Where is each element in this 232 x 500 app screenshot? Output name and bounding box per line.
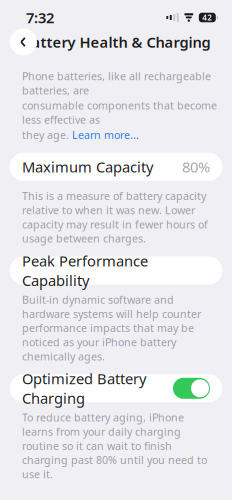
staticText: Phone batteries, like all rechargeable b… bbox=[22, 69, 211, 97]
button[interactable]: Optimized Battery Charging bbox=[10, 374, 222, 402]
staticText: This is a measure of battery capacity re… bbox=[22, 189, 208, 245]
staticText: 7:32 bbox=[26, 8, 54, 27]
staticText: Optimized Battery Charging bbox=[22, 369, 146, 408]
button[interactable]: Back bbox=[10, 28, 37, 55]
button[interactable]: Learn more... bbox=[72, 128, 139, 142]
button[interactable]: Maximum Capacity bbox=[10, 153, 222, 181]
staticText: Battery Health & Charging bbox=[21, 32, 210, 52]
staticText: Maximum Capacity bbox=[22, 157, 153, 177]
staticText: they age. bbox=[22, 128, 72, 142]
button[interactable]: Peak Performance Capability bbox=[10, 256, 222, 284]
staticText: consumable components that become less e… bbox=[22, 98, 217, 127]
staticText: Learn more... bbox=[72, 128, 139, 142]
staticText: Built-in dynamic software and hardware s… bbox=[22, 292, 201, 363]
staticText: To reduce battery aging, iPhone learns f… bbox=[22, 410, 207, 481]
staticText: 80% bbox=[182, 157, 210, 177]
staticText: 42 bbox=[202, 12, 212, 23]
staticText: Peak Performance Capability bbox=[22, 251, 148, 290]
